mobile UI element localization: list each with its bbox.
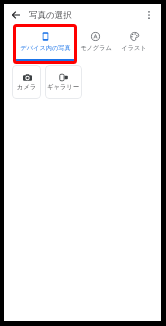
staticText: イラスト	[121, 44, 147, 52]
button[interactable]: Back	[8, 7, 24, 23]
staticText: ギャラリー	[47, 83, 80, 91]
button[interactable]: More options	[141, 7, 157, 23]
button[interactable]: ギャラリー	[45, 65, 82, 99]
button[interactable]: モノグラム	[77, 26, 114, 66]
button[interactable]: デバイス内の写真	[13, 26, 77, 66]
staticText: 写真の選択	[29, 10, 72, 21]
button[interactable]: カメラ	[12, 65, 41, 99]
staticText: モノグラム	[80, 44, 112, 52]
button[interactable]: イラスト	[114, 26, 154, 66]
staticText: デバイス内の写真	[20, 44, 71, 52]
staticText: カメラ	[17, 83, 37, 91]
